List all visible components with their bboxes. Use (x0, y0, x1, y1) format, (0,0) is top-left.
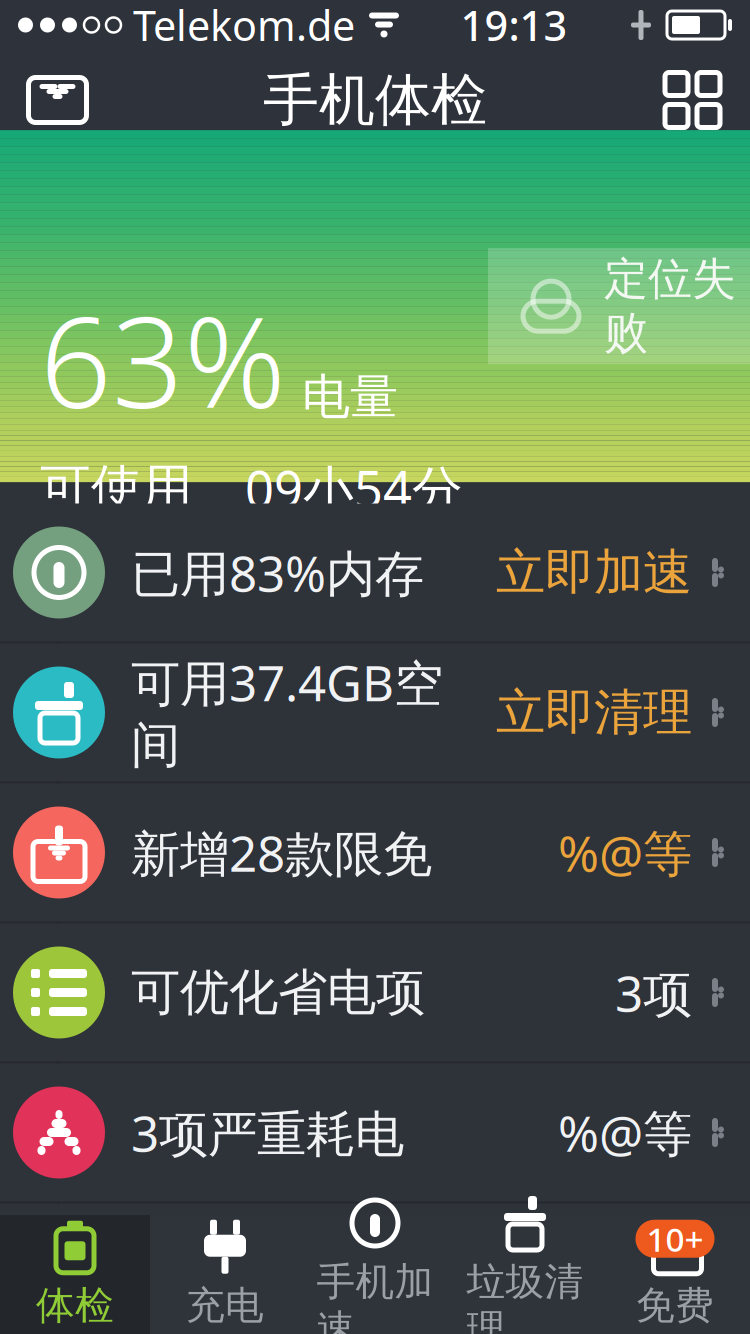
button[interactable]: 可优化省电项 (0, 923, 750, 1061)
staticText: 免费 (636, 1282, 714, 1329)
staticText: 19:13 (460, 0, 567, 52)
staticText: 体检 (36, 1282, 114, 1329)
staticText: 立即加速 (496, 542, 692, 603)
staticText: 可用37.4GB空间 (131, 649, 443, 775)
staticText: Telekom.de (133, 0, 355, 52)
staticText: 电量 (302, 368, 398, 427)
staticText: %@等 (558, 820, 692, 885)
staticText: 3项严重耗电 (131, 1100, 404, 1165)
staticText: 立即清理 (496, 682, 692, 743)
staticText: 垃圾清理 (466, 1258, 583, 1334)
button[interactable]: 体检 (0, 1215, 150, 1334)
staticText: 3项 (615, 960, 692, 1025)
staticText: 定位失败 (604, 252, 736, 360)
button[interactable]: 新增28款限免 (0, 783, 750, 921)
button[interactable]: 可用37.4GB空间 (0, 643, 750, 781)
staticText: 新增28款限免 (131, 820, 432, 885)
staticText: 09小54分 (245, 455, 463, 522)
button[interactable]: 垃圾清理 (450, 1215, 600, 1334)
staticText: 10+ (646, 1217, 703, 1261)
staticText: 充电 (186, 1282, 264, 1329)
button[interactable]: 充电 (150, 1215, 300, 1334)
button[interactable]: More options (635, 50, 750, 150)
staticText: 可使用 (40, 457, 193, 519)
staticText: 手机加速 (316, 1258, 433, 1334)
staticText: 已用83%内存 (131, 540, 424, 605)
button[interactable]: 手机加速 (300, 1215, 450, 1334)
staticText: 63% (40, 276, 286, 442)
staticText: 可优化省电项 (131, 962, 425, 1023)
button[interactable]: 定位失败 (488, 248, 750, 364)
button[interactable]: 3项严重耗电 (0, 1063, 750, 1201)
button[interactable]: 已用83%内存 (0, 503, 750, 641)
staticText: 手机体检 (263, 66, 487, 134)
button[interactable]: Messages (0, 50, 115, 150)
button[interactable]: 10+ (600, 1215, 750, 1334)
staticText: %@等 (558, 1100, 692, 1165)
